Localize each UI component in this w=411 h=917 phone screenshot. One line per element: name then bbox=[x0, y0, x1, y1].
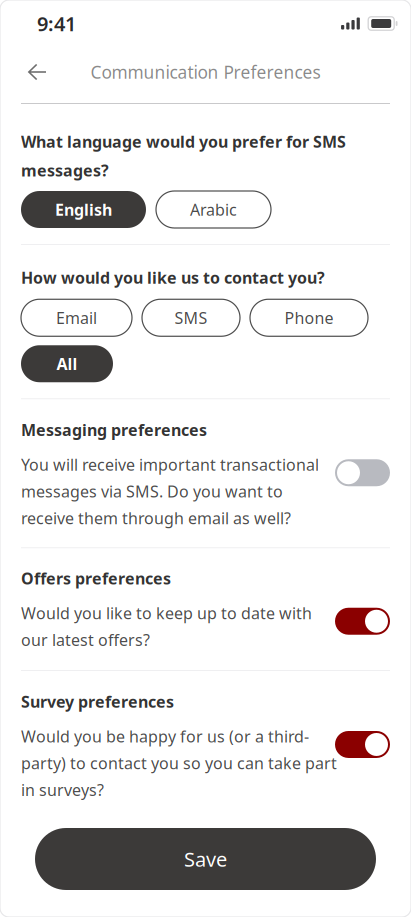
staticText: What language would you prefer for SMS bbox=[21, 131, 346, 152]
staticText: messages? bbox=[21, 160, 109, 181]
button[interactable]: Turn off bbox=[335, 608, 390, 635]
staticText: Email bbox=[56, 307, 97, 328]
staticText: English bbox=[55, 199, 112, 220]
staticText: party) to contact you so you can take pa… bbox=[21, 752, 337, 774]
staticText: receive them through email as well? bbox=[21, 507, 291, 529]
button[interactable]: Turn on bbox=[335, 459, 390, 486]
button[interactable]: Arabic bbox=[156, 191, 271, 228]
staticText: All bbox=[56, 353, 77, 374]
staticText: Phone bbox=[284, 307, 333, 328]
staticText: Arabic bbox=[190, 199, 237, 220]
staticText: Communication Preferences bbox=[90, 60, 320, 83]
staticText: You will receive important transactional bbox=[21, 454, 319, 475]
button[interactable]: Back bbox=[16, 51, 58, 93]
staticText: SMS bbox=[174, 307, 207, 328]
button[interactable]: Save bbox=[35, 828, 376, 890]
button[interactable]: Turn off bbox=[335, 731, 390, 758]
staticText: Offers preferences bbox=[21, 568, 171, 589]
staticText: 9:41 bbox=[37, 10, 76, 37]
button[interactable]: Email bbox=[21, 299, 132, 336]
button[interactable]: English bbox=[21, 191, 146, 228]
button[interactable]: Phone bbox=[250, 299, 368, 336]
staticText: Would you be happy for us (or a third- bbox=[21, 726, 309, 747]
staticText: messages via SMS. Do you want to bbox=[21, 481, 283, 502]
staticText: in surveys? bbox=[21, 779, 104, 800]
staticText: our latest offers? bbox=[21, 629, 150, 650]
button[interactable]: SMS bbox=[142, 299, 240, 336]
staticText: Survey preferences bbox=[21, 691, 174, 712]
staticText: Would you like to keep up to date with bbox=[21, 602, 312, 624]
staticText: Messaging preferences bbox=[21, 419, 207, 440]
button[interactable]: All bbox=[21, 345, 113, 382]
staticText: Save bbox=[184, 846, 227, 872]
staticText: How would you like us to contact you? bbox=[21, 267, 325, 288]
